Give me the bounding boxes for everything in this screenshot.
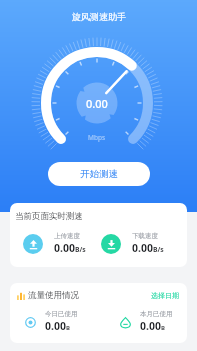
staticText: B xyxy=(161,324,165,332)
button[interactable]: Upload xyxy=(23,232,101,255)
button[interactable]: 本月已使用 xyxy=(118,310,187,333)
other: 今日已使用 xyxy=(23,315,37,329)
staticText: 本月已使用 xyxy=(140,310,173,318)
staticText: 0.00 xyxy=(54,241,75,255)
button[interactable]: 今日已使用 xyxy=(23,310,95,333)
staticText: 旋风测速助手 xyxy=(72,11,126,22)
staticText: 选择日期 xyxy=(151,291,179,300)
button[interactable]: 开始测速 xyxy=(48,162,150,186)
staticText: 今日已使用 xyxy=(45,310,78,318)
staticText: B/s xyxy=(153,245,164,254)
staticText: B xyxy=(66,324,70,332)
staticText: 0.00 xyxy=(86,96,108,111)
staticText: 当前页面实时测速 xyxy=(15,211,83,222)
staticText: B/s xyxy=(75,245,86,254)
staticText: 开始测速 xyxy=(80,168,118,180)
staticText: 流量使用情况 xyxy=(28,290,79,301)
other: Upload xyxy=(23,234,43,254)
staticText: 上传速度 xyxy=(54,232,80,240)
button[interactable]: 选择日期 xyxy=(151,291,179,300)
staticText: 0.00 xyxy=(140,319,161,333)
other: 本月已使用 xyxy=(118,315,132,329)
other: Download xyxy=(101,234,121,254)
staticText: 下载速度 xyxy=(132,232,158,240)
staticText: 0.00 xyxy=(132,241,153,255)
staticText: Mbps xyxy=(88,133,106,142)
staticText: 0.00 xyxy=(45,319,66,333)
button[interactable]: Download xyxy=(101,232,179,255)
